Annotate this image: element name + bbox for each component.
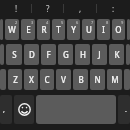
staticText: ! xyxy=(15,3,18,14)
button[interactable]: , xyxy=(64,0,97,17)
button[interactable]: Emoji xyxy=(14,95,34,124)
button[interactable]: ? xyxy=(32,0,64,17)
staticText: ? xyxy=(46,3,50,14)
button[interactable]: Comma xyxy=(0,95,12,124)
button[interactable]: R xyxy=(37,19,50,40)
staticText: 7 xyxy=(91,20,94,25)
button[interactable]: I xyxy=(97,19,110,40)
staticText: : xyxy=(112,3,115,14)
staticText: S xyxy=(12,49,17,60)
staticText: , xyxy=(79,3,82,14)
button[interactable]: Period xyxy=(118,95,130,124)
staticText: G xyxy=(63,49,69,60)
button[interactable]: Y xyxy=(67,19,80,40)
button[interactable]: O xyxy=(112,19,125,40)
staticText: V xyxy=(61,74,66,85)
button[interactable]: D xyxy=(24,44,39,65)
staticText: U xyxy=(86,24,92,35)
button[interactable]: Z xyxy=(8,69,22,90)
button[interactable]: B xyxy=(73,69,88,90)
staticText: I xyxy=(102,24,105,35)
staticText: 2 xyxy=(15,20,18,25)
button[interactable]: W xyxy=(5,19,19,40)
staticText: Z xyxy=(13,74,18,85)
button[interactable] xyxy=(0,19,3,40)
staticText: D xyxy=(29,49,35,60)
staticText: J xyxy=(98,49,101,60)
button[interactable]: G xyxy=(58,44,73,65)
button[interactable] xyxy=(126,44,130,65)
staticText: Y xyxy=(71,24,76,35)
staticText: 9 xyxy=(121,20,124,25)
button[interactable]: : xyxy=(97,0,130,17)
button[interactable] xyxy=(0,69,6,90)
button[interactable] xyxy=(127,19,130,40)
staticText: R xyxy=(41,24,47,35)
staticText: C xyxy=(44,74,50,85)
button[interactable]: F xyxy=(41,44,56,65)
staticText: H xyxy=(80,49,86,60)
staticText: 6 xyxy=(76,20,79,25)
staticText: N xyxy=(94,74,101,85)
button[interactable]: U xyxy=(82,19,95,40)
staticText: 4 xyxy=(46,20,49,25)
button[interactable]: E xyxy=(21,19,35,40)
staticText: O xyxy=(115,24,122,35)
staticText: X xyxy=(29,74,34,85)
button[interactable]: J xyxy=(92,44,107,65)
button[interactable]: C xyxy=(40,69,54,90)
staticText: 8 xyxy=(106,20,109,25)
button[interactable]: N xyxy=(90,69,105,90)
staticText: M xyxy=(111,74,119,85)
button[interactable]: T xyxy=(52,19,65,40)
button[interactable] xyxy=(124,69,130,90)
staticText: F xyxy=(46,49,51,60)
button[interactable]: V xyxy=(56,69,71,90)
staticText: B xyxy=(78,74,84,85)
button[interactable]: K xyxy=(109,44,124,65)
staticText: K xyxy=(114,49,120,60)
staticText: 5 xyxy=(61,20,64,25)
staticText: , xyxy=(3,105,5,115)
staticText: 3 xyxy=(31,20,34,25)
button[interactable] xyxy=(0,44,4,65)
staticText: E xyxy=(26,24,31,35)
button[interactable]: S xyxy=(6,44,22,65)
staticText: T xyxy=(56,24,61,35)
button[interactable]: ! xyxy=(0,0,32,17)
button[interactable]: X xyxy=(24,69,38,90)
staticText: . xyxy=(125,105,127,115)
button[interactable]: H xyxy=(75,44,90,65)
button[interactable]: M xyxy=(107,69,122,90)
staticText: W xyxy=(8,24,16,35)
